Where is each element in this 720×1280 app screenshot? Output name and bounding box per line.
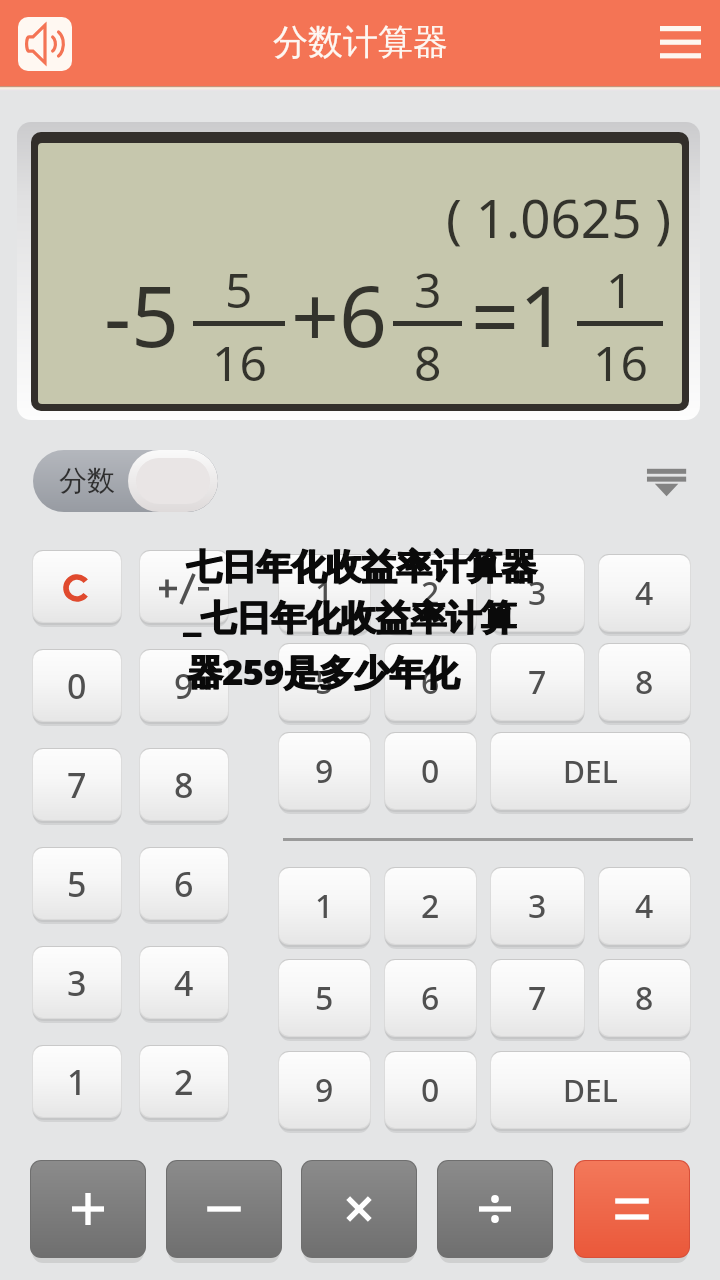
button[interactable]: 9 — [279, 1052, 370, 1128]
staticText: 5 — [315, 976, 334, 1020]
button[interactable]: 7 — [491, 644, 584, 720]
button[interactable]: DEL — [491, 733, 690, 809]
button[interactable]: 1 — [279, 555, 370, 631]
button[interactable]: Clear — [33, 551, 121, 622]
staticText: 16 — [593, 330, 648, 395]
button[interactable]: Equals — [575, 1161, 689, 1257]
staticText: 1 — [315, 571, 334, 615]
staticText: 2 — [421, 884, 440, 928]
staticText: 8 — [174, 762, 194, 808]
staticText: 1 — [67, 1059, 87, 1105]
staticText: 6 — [421, 976, 440, 1020]
staticText: +6 — [291, 257, 388, 371]
button[interactable]: 9 — [140, 650, 228, 721]
button[interactable]: 7 — [491, 960, 584, 1036]
staticText: _七日年化收益率计算 — [183, 593, 516, 641]
staticText: DEL — [563, 1070, 618, 1111]
button[interactable]: 9 — [279, 733, 370, 809]
staticText: 3 — [528, 884, 547, 928]
button[interactable]: 4 — [140, 947, 228, 1018]
staticText: 7 — [67, 762, 87, 808]
button[interactable]: 8 — [140, 749, 228, 820]
staticText: 5 — [67, 861, 87, 907]
staticText: 8 — [414, 330, 442, 395]
button[interactable]: 6 — [385, 644, 476, 720]
button[interactable]: 0 — [385, 733, 476, 809]
button[interactable]: 4 — [599, 555, 690, 631]
staticText: 七日年化收益率计算器 — [187, 545, 537, 589]
button[interactable]: DEL — [491, 1052, 690, 1128]
button[interactable]: 6 — [140, 848, 228, 919]
staticText: 分数 — [59, 463, 115, 498]
staticText: 1 — [606, 257, 634, 322]
staticText: -5 — [104, 257, 180, 371]
staticText: 16 — [212, 330, 267, 395]
staticText: 0 — [421, 1068, 440, 1112]
staticText: 6 — [174, 861, 194, 907]
button[interactable]: 3 — [491, 555, 584, 631]
staticText: DEL — [563, 751, 618, 792]
staticText: 9 — [315, 1068, 334, 1112]
staticText: ( 1.0625 ) — [446, 181, 672, 253]
button[interactable]: 2 — [140, 1046, 228, 1117]
staticText: 7 — [528, 660, 547, 704]
staticText: 3 — [528, 571, 547, 615]
staticText: 9 — [174, 663, 194, 709]
button[interactable]: 6 — [385, 960, 476, 1036]
button[interactable]: 0 — [33, 650, 121, 721]
staticText: 3 — [414, 257, 442, 322]
button[interactable]: 1 — [33, 1046, 121, 1117]
staticText: 2 — [174, 1059, 194, 1105]
button[interactable]: Menu — [650, 16, 704, 70]
button[interactable]: 5 — [279, 960, 370, 1036]
button[interactable]: Divide — [438, 1161, 552, 1257]
button[interactable]: 8 — [599, 644, 690, 720]
button[interactable]: 2 — [385, 868, 476, 944]
button[interactable]: 分数 — [33, 450, 218, 512]
staticText: 5 — [225, 257, 253, 322]
staticText: 4 — [635, 571, 654, 615]
staticText: 0 — [67, 663, 87, 709]
button[interactable]: 3 — [491, 868, 584, 944]
button[interactable]: Sound — [18, 17, 72, 71]
staticText: 分数计算器 — [273, 20, 448, 64]
staticText: 1 — [315, 884, 334, 928]
staticText: 9 — [315, 749, 334, 793]
staticText: 4 — [635, 884, 654, 928]
button[interactable]: 7 — [33, 749, 121, 820]
staticText: =1 — [471, 257, 568, 371]
staticText: 6 — [421, 660, 440, 704]
staticText: 5 — [315, 660, 334, 704]
staticText: 器259是多少年化 — [188, 648, 460, 696]
button[interactable]: 5 — [33, 848, 121, 919]
button[interactable]: Equals options — [638, 452, 694, 508]
button[interactable]: 4 — [599, 868, 690, 944]
button[interactable]: Minus — [167, 1161, 281, 1257]
staticText: 7 — [528, 976, 547, 1020]
button[interactable]: Multiply — [302, 1161, 416, 1257]
staticText: 器259是多少年化 — [187, 648, 459, 696]
button[interactable]: Plus minus — [140, 551, 228, 622]
staticText: 2 — [421, 571, 440, 615]
staticText: 七日年化收益率计算器 — [186, 545, 536, 589]
button[interactable]: 0 — [385, 1052, 476, 1128]
staticText: _七日年化收益率计算 — [184, 593, 517, 641]
staticText: 3 — [67, 960, 87, 1006]
button[interactable]: 2 — [385, 555, 476, 631]
button[interactable]: 5 — [279, 644, 370, 720]
button[interactable]: Plus — [31, 1161, 145, 1257]
button[interactable]: 8 — [599, 960, 690, 1036]
staticText: 8 — [635, 660, 654, 704]
button[interactable]: 3 — [33, 947, 121, 1018]
staticText: 4 — [174, 960, 194, 1006]
button[interactable]: 1 — [279, 868, 370, 944]
staticText: 8 — [635, 976, 654, 1020]
staticText: 0 — [421, 749, 440, 793]
